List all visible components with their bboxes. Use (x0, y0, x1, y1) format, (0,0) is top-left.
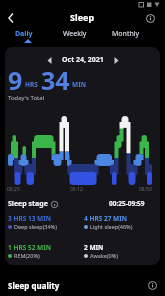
staticText: 00:25 (7, 186, 20, 193)
staticText: REM(20%) (14, 252, 40, 259)
button[interactable]: Daily (15, 29, 33, 39)
staticText: Oct 24, 2021 (62, 55, 104, 65)
staticText: 1 HRS 52 MIN (8, 243, 51, 252)
staticText: Sleep (70, 11, 95, 23)
staticText: Today's Total (8, 94, 45, 102)
staticText: Sleep stage (8, 199, 48, 209)
button[interactable]: Sleep quality (0, 274, 165, 296)
staticText: 08:50 (139, 186, 152, 193)
staticText: MIN (72, 80, 86, 89)
staticText: 4 HRS 27 MIN (84, 214, 127, 223)
staticText: Light sleep(46%) (90, 223, 133, 230)
button[interactable] (146, 14, 155, 23)
staticText: HRS (25, 80, 38, 89)
staticText: 2 MIN (84, 243, 104, 252)
staticText: 9 (8, 63, 23, 97)
button[interactable]: Weekly (63, 29, 87, 39)
button[interactable]: Oct 24, 2021 (47, 55, 119, 65)
staticText: Awake(0%) (90, 252, 118, 259)
staticText: Sleep quality (8, 280, 60, 291)
staticText: 00:25-09:59 (109, 199, 145, 208)
staticText: 05:12 (70, 186, 83, 193)
staticText: 34 (41, 63, 70, 97)
staticText: 3 HRS 13 MIN (8, 214, 51, 223)
button[interactable]: Monthly (112, 29, 140, 39)
staticText: Deep sleep(34%) (14, 223, 57, 230)
button[interactable]: Sleep stage (8, 199, 58, 209)
button[interactable] (8, 13, 14, 23)
